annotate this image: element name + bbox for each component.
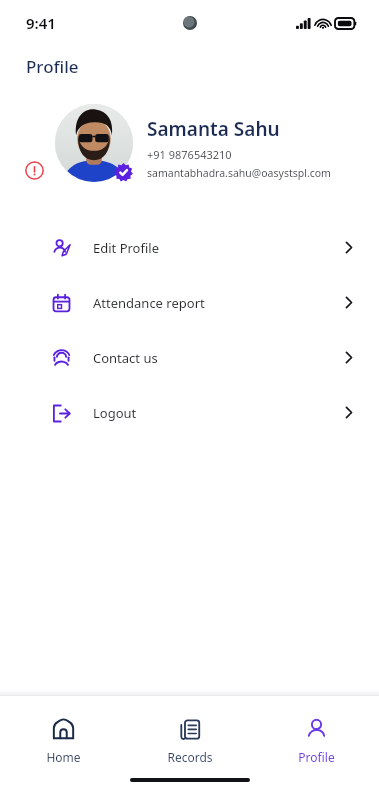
staticText: samantabhadra.sahu@oasystspl.com [147,166,331,180]
staticText: Attendance report [93,294,205,312]
staticText: Profile [298,749,335,765]
button[interactable]: Home [0,696,127,778]
button[interactable]: Edit Profile [0,220,379,275]
button[interactable]: Profile [253,696,379,778]
staticText: Contact us [93,349,158,367]
staticText: Logout [93,404,137,422]
staticText: +91 9876543210 [147,147,232,162]
staticText: Samanta Sahu [147,116,280,142]
staticText: Home [46,749,81,765]
button[interactable]: Contact us [0,330,379,385]
button[interactable]: Records [127,696,253,778]
button[interactable]: Profile incomplete warning [25,161,44,180]
staticText: Profile [26,55,79,78]
button[interactable]: Attendance report [0,275,379,330]
staticText: 9:41 [26,13,56,33]
staticText: Edit Profile [93,239,160,257]
staticText: Records [167,749,213,765]
button[interactable]: Logout [0,385,379,440]
